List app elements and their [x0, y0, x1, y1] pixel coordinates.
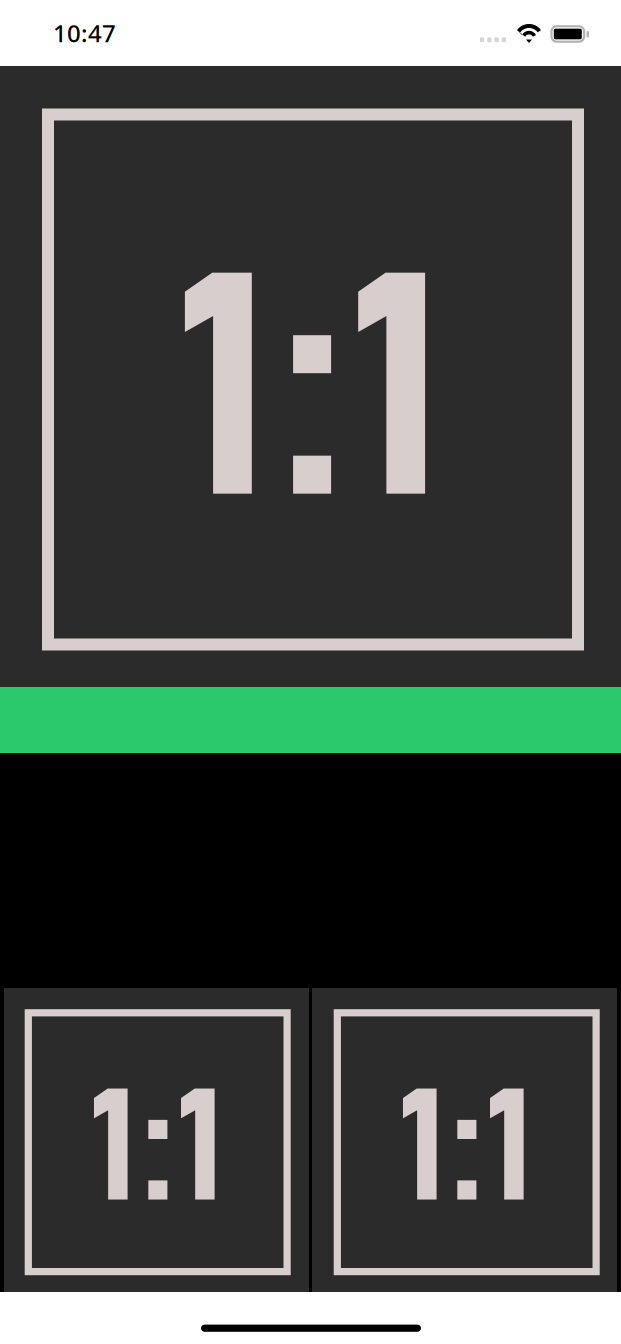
button[interactable]: 1:1 aspect ratio	[312, 988, 617, 1292]
button[interactable]: 1:1 aspect ratio	[4, 988, 309, 1292]
staticText: 10:47	[53, 17, 116, 49]
button[interactable]: Square 1:1 crop, selected	[0, 66, 621, 687]
